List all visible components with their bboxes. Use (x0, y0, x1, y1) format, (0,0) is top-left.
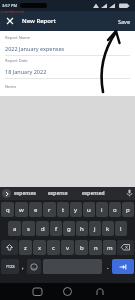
button[interactable]: n (89, 240, 102, 255)
staticText: n (94, 244, 98, 252)
button[interactable]: h (76, 221, 88, 236)
button[interactable]: m (103, 240, 116, 255)
button[interactable]: k (102, 221, 114, 236)
button[interactable]: v (61, 240, 74, 255)
button[interactable]: . (104, 259, 112, 274)
button[interactable]: g (63, 221, 75, 236)
button[interactable] (27, 259, 41, 274)
staticText: g (67, 225, 71, 233)
button[interactable] (117, 240, 134, 255)
staticText: u (87, 206, 91, 214)
staticText: x (38, 244, 42, 252)
staticText: Save (118, 18, 131, 25)
staticText: ?123 (6, 264, 15, 269)
button[interactable]: q (1, 202, 14, 217)
button[interactable]: o (109, 202, 121, 217)
staticText: s (27, 225, 30, 233)
staticText: c (52, 244, 55, 252)
button[interactable]: c (47, 240, 60, 255)
button[interactable]: expense (48, 190, 68, 197)
staticText: Notes (5, 84, 17, 89)
staticText: Confidential (1, 9, 24, 14)
staticText: i (101, 206, 103, 214)
staticText: q (6, 206, 10, 214)
button[interactable]: b (75, 240, 88, 255)
button[interactable]: s (22, 221, 35, 236)
staticText: Report Date (5, 58, 28, 63)
button[interactable]: a (8, 221, 21, 236)
button[interactable]: expenses (14, 190, 36, 197)
staticText: v (66, 244, 70, 252)
button[interactable]: e (29, 202, 42, 217)
button[interactable]: u (83, 202, 95, 217)
button[interactable]: w (15, 202, 28, 217)
button[interactable]: t (57, 202, 69, 217)
staticText: e (34, 206, 38, 214)
staticText: New Report (22, 17, 56, 25)
button[interactable]: f (50, 221, 62, 236)
button[interactable] (2, 189, 11, 198)
staticText: f (55, 225, 58, 233)
button[interactable] (4, 15, 16, 27)
staticText: m (107, 244, 113, 252)
button[interactable]: d (36, 221, 49, 236)
staticText: 2022 January expenses (5, 45, 65, 52)
button[interactable]: p (122, 202, 134, 217)
button[interactable]: ?123 (1, 259, 19, 274)
button[interactable]: i (96, 202, 108, 217)
staticText: j (94, 225, 96, 233)
button[interactable]: , (19, 259, 27, 274)
button[interactable]: l (115, 221, 127, 236)
button[interactable]: r (43, 202, 56, 217)
staticText: z (24, 244, 27, 252)
staticText: 3:57 PM (2, 3, 18, 8)
staticText: o (113, 206, 117, 214)
button[interactable]: expensed (82, 190, 105, 197)
staticText: b (80, 244, 84, 252)
staticText: l (120, 225, 122, 233)
staticText: , (22, 263, 24, 271)
button[interactable] (112, 259, 134, 274)
button[interactable]: x (33, 240, 46, 255)
staticText: p (126, 206, 130, 214)
staticText: h (80, 225, 84, 233)
button[interactable]: y (70, 202, 82, 217)
staticText: w (19, 206, 24, 214)
button[interactable] (1, 240, 18, 255)
button[interactable]: z (19, 240, 32, 255)
staticText: k (106, 225, 110, 233)
staticText: r (48, 206, 51, 214)
button[interactable]: j (89, 221, 101, 236)
staticText: a (13, 225, 17, 233)
button[interactable]: Save (118, 18, 131, 25)
staticText: 18 January 2022 (5, 68, 47, 75)
staticText: d (41, 225, 45, 233)
staticText: . (107, 263, 109, 271)
staticText: Report Name (5, 35, 31, 40)
staticText: y (74, 206, 78, 214)
staticText: t (62, 206, 65, 214)
